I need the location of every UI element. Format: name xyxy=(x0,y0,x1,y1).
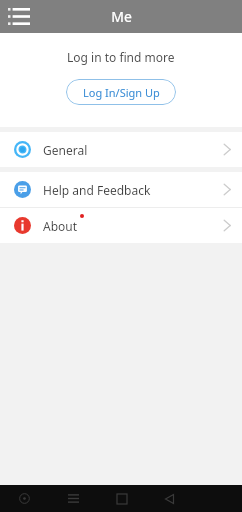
staticText: Help and Feedback xyxy=(43,182,151,198)
staticText: About xyxy=(43,218,78,234)
button[interactable]: About xyxy=(0,208,242,243)
button[interactable]: Help and Feedback xyxy=(0,172,242,207)
staticText: Me xyxy=(111,7,132,26)
button[interactable]: Recents xyxy=(49,485,98,512)
button[interactable]: Back xyxy=(146,485,194,512)
staticText: General xyxy=(43,142,88,158)
button[interactable]: Menu xyxy=(0,0,38,33)
button[interactable]: General xyxy=(0,132,242,167)
staticText: Log in to find more xyxy=(67,49,175,65)
staticText: Log In/Sign Up xyxy=(83,85,160,100)
button[interactable]: Log In/Sign Up xyxy=(66,79,176,105)
button[interactable]: Assistant xyxy=(0,485,49,512)
button[interactable]: Home xyxy=(98,485,146,512)
